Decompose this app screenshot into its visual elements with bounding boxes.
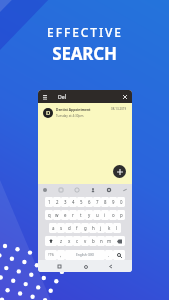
button[interactable]: ?1% (45, 250, 57, 260)
staticText: English (UK) (76, 253, 94, 257)
staticText: 7 (96, 199, 99, 205)
button[interactable]: 0 (117, 197, 125, 207)
button[interactable]: t (77, 210, 85, 220)
button[interactable]: n (97, 236, 105, 246)
button[interactable]: Expand (121, 186, 129, 194)
button[interactable]: h (89, 223, 97, 233)
button[interactable]: 1 (45, 197, 53, 207)
staticText: 9 (112, 199, 115, 205)
staticText: 08-13-2019 (111, 107, 127, 111)
staticText: SEARCH (52, 42, 117, 65)
staticText: x (68, 238, 71, 244)
button[interactable]: w (53, 210, 61, 220)
staticText: Dentist Appointment (56, 108, 91, 112)
button[interactable]: Close (120, 92, 130, 102)
staticText: 0 (120, 199, 123, 205)
button[interactable]: , (57, 250, 65, 260)
button[interactable]: 7 (93, 197, 101, 207)
button[interactable]: Home (81, 262, 90, 271)
button[interactable]: i (101, 210, 109, 220)
staticText: n (100, 238, 103, 244)
button[interactable]: Backspace (113, 236, 125, 246)
staticText: . (108, 252, 110, 258)
staticText: b (92, 238, 95, 244)
staticText: 3 (64, 199, 67, 205)
staticText: w (55, 212, 59, 218)
staticText: r (72, 212, 74, 218)
button[interactable]: 6 (85, 197, 93, 207)
button[interactable]: z (57, 236, 65, 246)
staticText: , (60, 252, 62, 258)
staticText: p (120, 212, 123, 218)
staticText: h (92, 225, 95, 231)
button[interactable]: . (105, 250, 113, 260)
button[interactable]: GIF (73, 186, 81, 194)
button[interactable]: Menu (40, 92, 49, 101)
button[interactable]: d (65, 223, 73, 233)
staticText: i (104, 212, 106, 218)
button[interactable]: 5 (77, 197, 85, 207)
staticText: z (60, 238, 63, 244)
button[interactable]: m (105, 236, 113, 246)
staticText: o (112, 212, 115, 218)
staticText: e (64, 212, 67, 218)
button[interactable]: o (109, 210, 117, 220)
staticText: f (76, 225, 78, 231)
staticText: u (96, 212, 99, 218)
staticText: q (48, 212, 51, 218)
button[interactable]: Add (113, 165, 126, 178)
button[interactable]: Shift (45, 236, 57, 246)
staticText: 8 (104, 199, 107, 205)
staticText: g (84, 225, 87, 231)
staticText: s (60, 225, 63, 231)
button[interactable]: English (UK) (65, 250, 105, 260)
staticText: l (116, 225, 118, 231)
button[interactable]: b (89, 236, 97, 246)
staticText: ?1% (48, 253, 54, 257)
button[interactable]: u (93, 210, 101, 220)
button[interactable]: r (69, 210, 77, 220)
button[interactable]: q (45, 210, 53, 220)
staticText: d (68, 225, 71, 231)
staticText: 1 (48, 199, 51, 205)
staticText: c (76, 238, 79, 244)
staticText: D (46, 109, 51, 117)
staticText: y (88, 212, 91, 218)
button[interactable]: g (81, 223, 89, 233)
button[interactable]: s (57, 223, 65, 233)
button[interactable]: Voice input (89, 186, 97, 194)
staticText: De (58, 93, 65, 100)
button[interactable]: c (73, 236, 81, 246)
button[interactable]: p (117, 210, 125, 220)
staticText: Tuesday at 4:30pm. (56, 114, 85, 118)
button[interactable]: 8 (101, 197, 109, 207)
button[interactable]: Stickers (57, 186, 65, 194)
button[interactable]: Google (41, 186, 49, 194)
staticText: m (107, 238, 112, 244)
button[interactable]: 3 (61, 197, 69, 207)
button[interactable]: k (105, 223, 113, 233)
staticText: v (84, 238, 87, 244)
staticText: 2 (56, 199, 59, 205)
button[interactable]: 2 (53, 197, 61, 207)
button[interactable]: l (113, 223, 121, 233)
button[interactable]: y (85, 210, 93, 220)
button[interactable]: 9 (109, 197, 117, 207)
staticText: a (52, 225, 55, 231)
button[interactable]: v (81, 236, 89, 246)
button[interactable]: e (61, 210, 69, 220)
button[interactable]: j (97, 223, 105, 233)
button[interactable]: Settings (105, 186, 113, 194)
button[interactable]: 4 (69, 197, 77, 207)
staticText: j (100, 225, 102, 231)
staticText: 6 (88, 199, 91, 205)
button[interactable]: Recents (55, 262, 64, 271)
button[interactable]: a (49, 223, 57, 233)
staticText: t (80, 212, 82, 218)
button[interactable]: x (65, 236, 73, 246)
button[interactable]: f (73, 223, 81, 233)
staticText: k (108, 225, 111, 231)
staticText: EFFECTIVE (47, 24, 123, 40)
button[interactable]: Search (113, 250, 125, 260)
button[interactable]: Back (106, 262, 115, 271)
